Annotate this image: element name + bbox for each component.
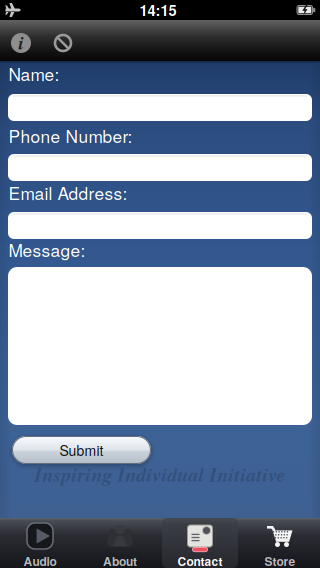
button[interactable]: Message text area — [8, 267, 312, 425]
button[interactable]: Block — [48, 28, 78, 58]
button[interactable]: Email Address — [8, 212, 312, 239]
button[interactable]: Submit — [12, 436, 151, 464]
staticText: Email Address: — [8, 180, 127, 205]
staticText: Audio — [23, 552, 56, 568]
staticText: 14:15 — [139, 0, 176, 20]
staticText: i — [18, 29, 23, 56]
staticText: Store — [264, 552, 295, 568]
staticText: About — [103, 552, 137, 568]
button[interactable]: Name — [8, 94, 312, 121]
button[interactable]: About — [80, 518, 160, 568]
button[interactable]: Audio — [0, 518, 80, 568]
button[interactable]: Contact — [160, 518, 240, 568]
staticText: Message: — [8, 237, 85, 262]
staticText: Phone Number: — [8, 123, 132, 148]
staticText: Name: — [8, 61, 59, 86]
staticText: Inspiring Individual Initiative — [34, 460, 285, 488]
button[interactable]: Store — [240, 518, 320, 568]
button[interactable]: Phone Number — [8, 154, 312, 181]
staticText: Submit — [59, 440, 103, 460]
staticText: Contact — [177, 552, 222, 568]
button[interactable]: Info — [6, 28, 36, 58]
